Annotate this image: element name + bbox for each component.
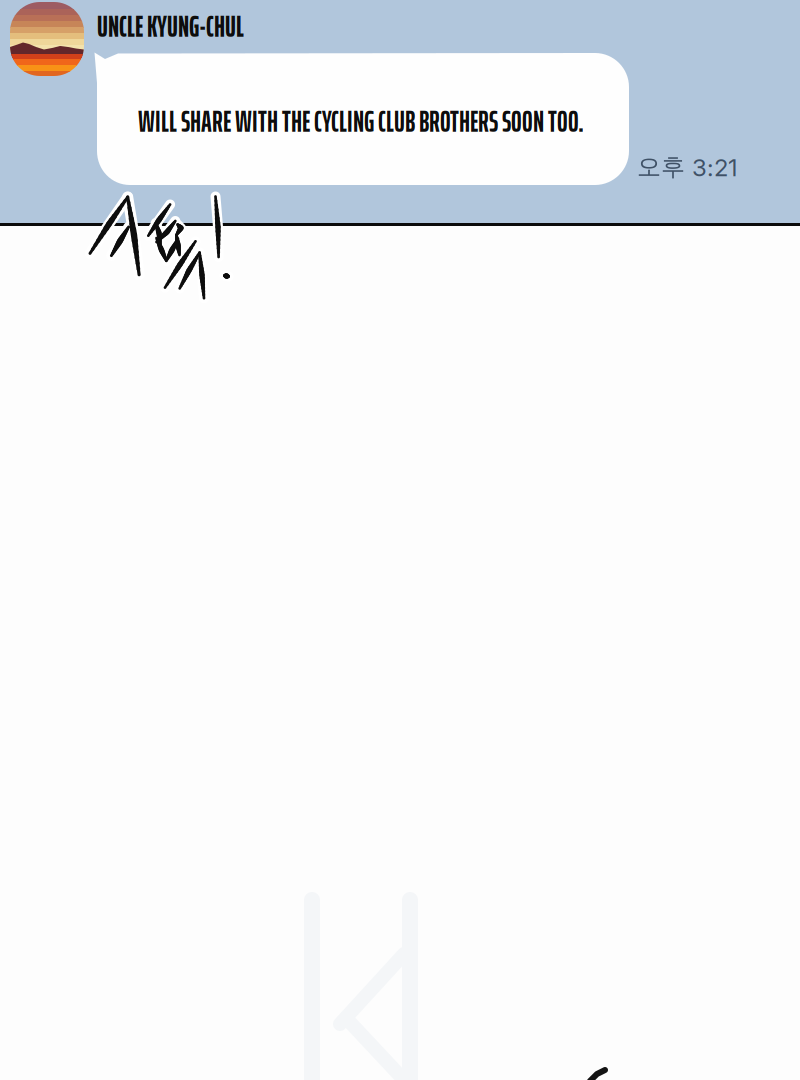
staticText: 오후 3:21: [637, 152, 738, 182]
staticText: WILL SHARE WITH THE CYCLING CLUB BROTHER…: [138, 97, 584, 145]
button[interactable]: WILL SHARE WITH THE CYCLING CLUB BROTHER…: [96, 53, 629, 185]
staticText: UNCLE KYUNG-CHUL: [97, 2, 244, 50]
button[interactable]: UNCLE KYUNG-CHUL: [97, 2, 244, 50]
button[interactable]: Uncle Kyung-Chul profile photo: [10, 2, 84, 76]
